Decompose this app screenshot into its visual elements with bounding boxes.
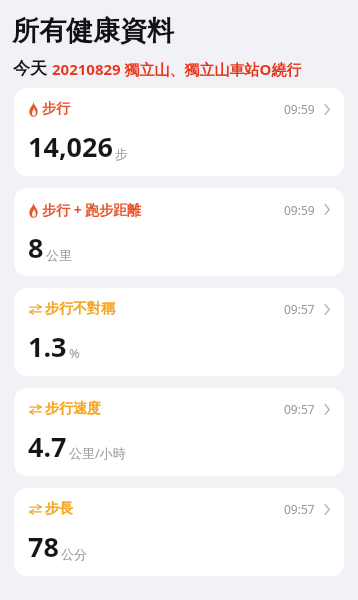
staticText: 公分 [61,546,87,562]
button[interactable]: 步行速度 [14,388,344,476]
button[interactable]: 步行不對稱 [14,288,344,376]
staticText: 78 [28,528,59,565]
staticText: 步行速度 [45,400,101,418]
staticText: 09:57 [284,401,315,417]
staticText: 步行 + 跑步距離 [42,200,142,219]
staticText: 步行不對稱 [45,300,115,318]
button[interactable]: 步行 [14,88,344,176]
staticText: 20210829 獨立山、獨立山車站O繞行 [52,59,302,79]
button[interactable]: 步行 + 跑步距離 [14,188,344,276]
staticText: 8 [28,229,44,266]
staticText: 4.7 [28,428,67,465]
button[interactable]: 步長 [14,488,344,576]
staticText: 步 [115,146,128,162]
staticText: 09:59 [284,202,315,218]
staticText: % [69,344,80,362]
staticText: 公里/小時 [69,444,126,462]
staticText: 09:57 [284,501,315,517]
staticText: 步行 [42,100,70,118]
staticText: 所有健康資料 [12,14,174,48]
staticText: 今天 [13,58,47,79]
staticText: 09:59 [284,101,315,117]
staticText: 09:57 [284,301,315,317]
staticText: 1.3 [28,328,67,365]
staticText: 步長 [45,500,73,518]
staticText: 公里 [46,247,72,263]
staticText: 14,026 [28,128,113,165]
